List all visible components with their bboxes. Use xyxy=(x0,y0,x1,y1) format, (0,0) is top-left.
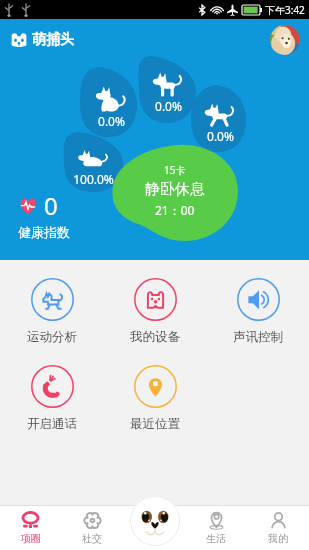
button[interactable]: 我的设备 xyxy=(109,276,201,347)
button[interactable]: 项圈 xyxy=(0,505,61,550)
button[interactable]: Profile xyxy=(270,25,300,55)
button[interactable]: Pet xyxy=(130,496,180,546)
staticText: 我的设备 xyxy=(130,329,180,345)
button[interactable]: 我的 xyxy=(247,505,309,550)
staticText: 健康指数 xyxy=(18,224,70,240)
button[interactable]: 0 xyxy=(18,189,70,240)
button[interactable]: 运动分析 xyxy=(6,276,98,347)
button[interactable]: 声讯控制 xyxy=(212,276,304,347)
staticText: 15卡 xyxy=(164,163,186,177)
staticText: 0 xyxy=(44,189,58,222)
button[interactable]: 0.0% xyxy=(85,88,137,129)
staticText: 21：00 xyxy=(155,202,195,218)
button[interactable]: 社交 xyxy=(61,505,123,550)
button[interactable]: 萌捕头 xyxy=(9,29,76,51)
staticText: 下午3:42 xyxy=(265,3,305,17)
staticText: 声讯控制 xyxy=(233,329,283,345)
staticText: 我的 xyxy=(268,532,288,545)
staticText: 萌捕头 xyxy=(32,31,74,49)
button[interactable]: 0.0% xyxy=(194,103,246,144)
staticText: 100.0% xyxy=(73,171,114,187)
staticText: 生活 xyxy=(206,532,226,545)
staticText: 运动分析 xyxy=(27,329,77,345)
staticText: 项圈 xyxy=(21,532,41,545)
staticText: 开启通话 xyxy=(27,416,77,432)
staticText: 0.0% xyxy=(207,128,234,144)
staticText: 0.0% xyxy=(98,113,125,129)
button[interactable]: 0.0% xyxy=(142,73,194,114)
button[interactable]: 开启通话 xyxy=(6,363,98,434)
staticText: 静卧休息 xyxy=(145,180,205,199)
staticText: 社交 xyxy=(82,532,102,545)
staticText: 最近位置 xyxy=(130,416,180,432)
button[interactable]: 生活 xyxy=(185,505,247,550)
button[interactable]: 最近位置 xyxy=(109,363,201,434)
staticText: 0.0% xyxy=(155,98,182,114)
button[interactable]: 100.0% xyxy=(67,146,119,187)
